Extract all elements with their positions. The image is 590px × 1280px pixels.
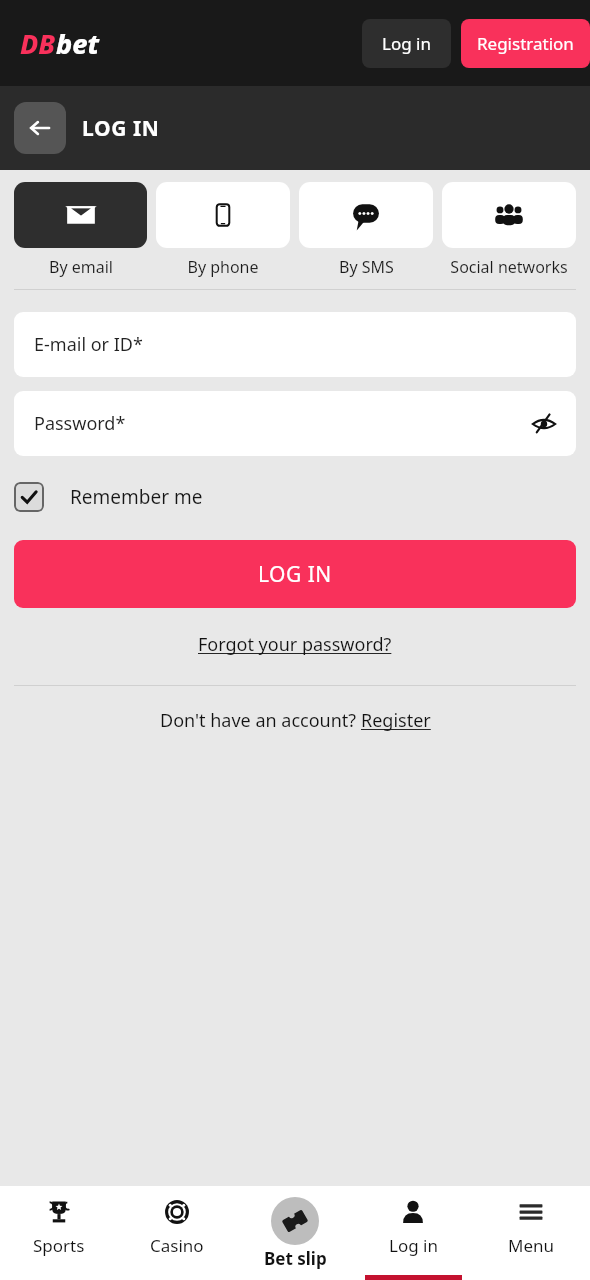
staticText: Log in: [382, 32, 431, 55]
button[interactable]: Show password: [526, 406, 562, 442]
staticText: By email: [49, 256, 113, 278]
staticText: Register: [361, 708, 431, 733]
button[interactable]: Remember me: [14, 482, 203, 512]
staticText: Social networks: [450, 256, 568, 278]
button[interactable]: E-mail or ID*: [14, 312, 576, 377]
staticText: Remember me: [70, 484, 203, 510]
staticText: LOG IN: [82, 114, 160, 143]
button[interactable]: Bet slip: [236, 1186, 354, 1280]
button[interactable]: Log in: [354, 1186, 472, 1280]
staticText: Bet slip: [264, 1247, 327, 1270]
button[interactable]: Register: [361, 708, 431, 733]
button[interactable]: Social networks: [442, 182, 576, 278]
staticText: Sports: [33, 1234, 85, 1257]
button[interactable]: By SMS: [299, 182, 433, 278]
button[interactable]: By phone: [156, 182, 290, 278]
staticText: By phone: [187, 256, 259, 278]
staticText: E-mail or ID*: [34, 332, 143, 357]
staticText: By SMS: [339, 256, 394, 278]
staticText: bet: [56, 25, 100, 62]
button[interactable]: Menu: [472, 1186, 590, 1280]
staticText: Forgot your password?: [198, 632, 392, 657]
button[interactable]: Casino: [118, 1186, 236, 1280]
button[interactable]: By email: [14, 182, 147, 278]
button[interactable]: Registration: [461, 19, 590, 68]
staticText: Log in: [389, 1234, 438, 1257]
staticText: Casino: [150, 1234, 204, 1257]
staticText: DB: [20, 25, 56, 62]
button[interactable]: Log in: [362, 19, 451, 68]
staticText: Registration: [477, 32, 574, 55]
button[interactable]: Back: [14, 102, 66, 154]
button[interactable]: Forgot your password?: [194, 628, 396, 661]
staticText: Menu: [508, 1234, 555, 1257]
button[interactable]: LOG IN: [14, 540, 576, 608]
button[interactable]: Sports: [0, 1186, 118, 1280]
staticText: Password*: [34, 411, 126, 436]
button[interactable]: DB: [20, 25, 100, 62]
button[interactable]: Password*: [14, 391, 576, 456]
staticText: LOG IN: [258, 560, 332, 589]
staticText: Don't have an account?: [160, 708, 361, 733]
